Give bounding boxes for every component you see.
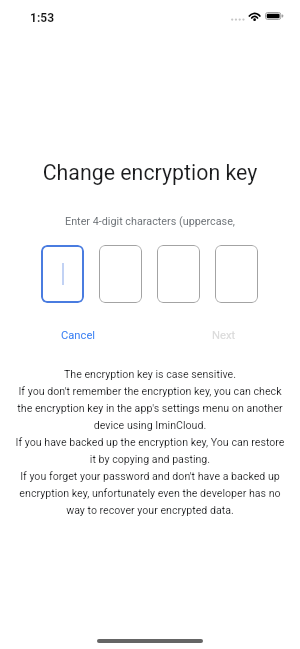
- other: Battery full: [265, 12, 284, 20]
- staticText: The encryption key is case sensitive. If…: [0, 368, 300, 516]
- button[interactable]: Cancel: [41, 327, 102, 344]
- staticText: Cancel: [61, 329, 96, 342]
- button[interactable]: Digit entry: [157, 245, 200, 303]
- staticText: 1:53: [30, 11, 55, 25]
- other: Wi-Fi: [247, 11, 262, 22]
- staticText: Change encryption key: [0, 160, 300, 185]
- button[interactable]: Digit entry: [215, 245, 258, 303]
- staticText: Enter 4-digit characters (uppercase, low…: [50, 215, 250, 228]
- staticText: Next: [212, 329, 236, 342]
- button[interactable]: Next: [206, 327, 258, 344]
- button[interactable]: Digit entry: [99, 245, 142, 303]
- button[interactable]: Digit entry: [41, 245, 84, 303]
